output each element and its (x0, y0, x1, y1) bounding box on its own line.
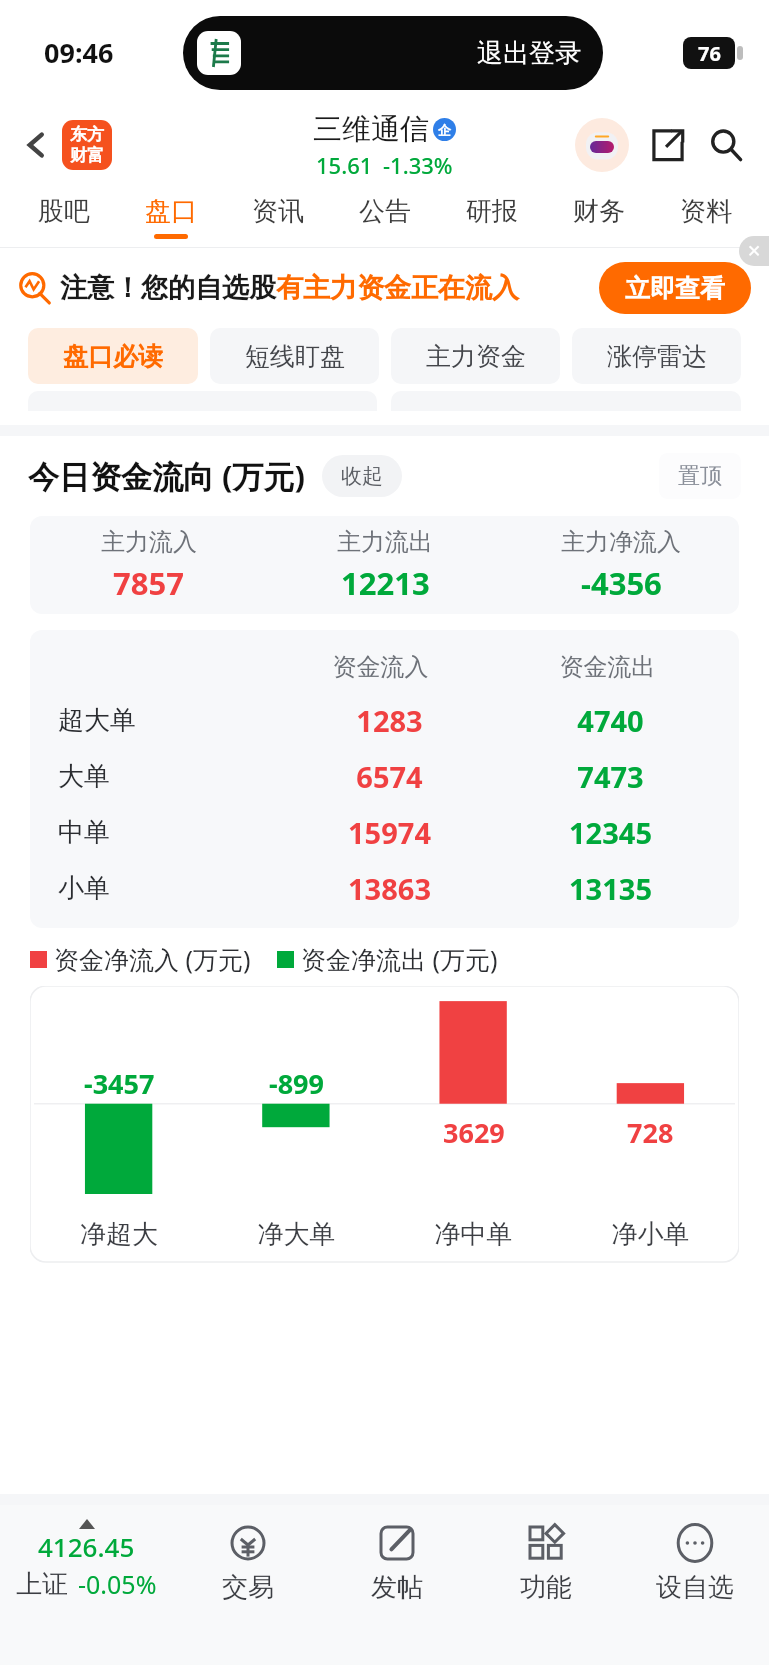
staticText: 研报 (466, 195, 518, 228)
staticText: -0.05% (78, 1567, 157, 1601)
button[interactable]: 盘口必读 (28, 328, 198, 384)
staticText: 东方 (70, 124, 104, 145)
staticText: 3629 (443, 1114, 505, 1151)
staticText: 资讯 (252, 195, 304, 228)
button[interactable]: 置顶 (659, 453, 741, 499)
staticText: 净超大 (30, 1218, 208, 1251)
staticText: 13863 (279, 869, 500, 908)
button[interactable]: 功能 (471, 1505, 620, 1665)
staticText: 资金净流出 (万元) (301, 942, 498, 976)
button[interactable]: 盘口 (117, 185, 224, 248)
staticText: 主力净流入 (561, 527, 681, 557)
staticText: 您的自选股 (141, 271, 276, 305)
staticText: 短线盯盘 (245, 341, 345, 372)
staticText: 13135 (500, 869, 721, 908)
staticText: 功能 (520, 1571, 572, 1604)
staticText: 中单 (58, 816, 279, 849)
staticText: 盘口必读 (63, 341, 163, 372)
staticText: 4740 (500, 701, 721, 740)
button[interactable]: 收起 (322, 455, 402, 497)
staticText: -4356 (581, 562, 662, 604)
staticText: 主力流出 (337, 527, 433, 557)
button[interactable]: 公告 (331, 185, 438, 248)
button[interactable]: Share (643, 120, 693, 170)
staticText: -3457 (84, 1065, 155, 1102)
button[interactable]: 资料 (652, 185, 759, 248)
staticText: 财富 (70, 145, 104, 166)
staticText: 盘口 (145, 195, 197, 228)
staticText: 76 (698, 40, 721, 67)
button[interactable]: 交易 (173, 1505, 322, 1665)
staticText: 超大单 (58, 704, 279, 737)
button[interactable]: 研报 (438, 185, 545, 248)
staticText: 12345 (500, 813, 721, 852)
staticText: 收起 (341, 463, 383, 489)
staticText: 7857 (113, 562, 184, 604)
staticText: 资金流出 (494, 652, 721, 682)
staticText: 15.61 (316, 150, 373, 180)
staticText: 置顶 (678, 462, 722, 490)
button[interactable]: AI assistant (575, 118, 629, 172)
staticText: 4126.45 (38, 1529, 135, 1564)
staticText: 大单 (58, 760, 279, 793)
staticText: 净中单 (385, 1218, 562, 1251)
staticText: -899 (269, 1065, 324, 1102)
staticText: 小单 (58, 872, 279, 905)
staticText: 主力资金 (426, 341, 526, 372)
staticText: 主力流入 (101, 527, 197, 557)
staticText: 涨停雷达 (607, 341, 707, 372)
button[interactable]: 资讯 (224, 185, 331, 248)
button[interactable]: Back (14, 123, 58, 167)
staticText: 有主力资金正在流入 (276, 271, 519, 305)
button[interactable]: 主力资金 (391, 328, 560, 384)
button[interactable]: 东方 (62, 120, 112, 170)
button[interactable]: 4126.45 (0, 1505, 173, 1665)
staticText: 上证 (16, 1568, 68, 1601)
staticText: -1.33% (383, 150, 453, 180)
staticText: 7473 (500, 757, 721, 796)
staticText: 财务 (573, 195, 625, 228)
button[interactable]: 短线盯盘 (210, 328, 379, 384)
staticText: 退出登录 (477, 37, 581, 70)
staticText: 注意！ (60, 271, 141, 305)
button[interactable]: Search (701, 120, 751, 170)
staticText: 12213 (341, 562, 430, 604)
staticText: 资料 (680, 195, 732, 228)
button[interactable]: 涨停雷达 (572, 328, 741, 384)
staticText: 股吧 (38, 195, 90, 228)
staticText: 净大单 (208, 1218, 385, 1251)
staticText: 三维通信 (313, 111, 429, 148)
staticText: 资金净流入 (万元) (54, 942, 251, 976)
staticText: 发帖 (371, 1571, 423, 1604)
staticText: 6574 (279, 757, 500, 796)
staticText: 立即查看 (625, 273, 725, 304)
staticText: 交易 (222, 1571, 274, 1604)
staticText: 728 (627, 1114, 674, 1151)
button[interactable]: Close (739, 236, 769, 266)
staticText: 资金流入 (267, 652, 494, 682)
button[interactable]: 股吧 (10, 185, 117, 248)
staticText: 公告 (359, 195, 411, 228)
staticText: 企 (438, 122, 451, 138)
staticText: 15974 (279, 813, 500, 852)
button[interactable]: 发帖 (322, 1505, 471, 1665)
staticText: 设自选 (656, 1571, 734, 1604)
staticText: 1283 (279, 701, 500, 740)
staticText: 净小单 (562, 1218, 739, 1251)
staticText: 09:46 (44, 34, 114, 71)
button[interactable]: 设自选 (620, 1505, 769, 1665)
staticText: 今日资金流向 (万元) (28, 455, 306, 497)
button[interactable]: 财务 (545, 185, 652, 248)
button[interactable]: 立即查看 (599, 262, 751, 314)
staticText: ✕ (747, 241, 762, 261)
